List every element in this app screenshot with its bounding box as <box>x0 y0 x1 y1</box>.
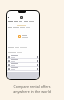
button[interactable] <box>8 59 38 62</box>
button[interactable] <box>8 63 38 66</box>
staticText: anywhere in the world <box>13 89 51 94</box>
button[interactable] <box>8 55 38 58</box>
staticText: Compare rental offers <box>13 84 51 89</box>
button[interactable] <box>8 67 38 70</box>
